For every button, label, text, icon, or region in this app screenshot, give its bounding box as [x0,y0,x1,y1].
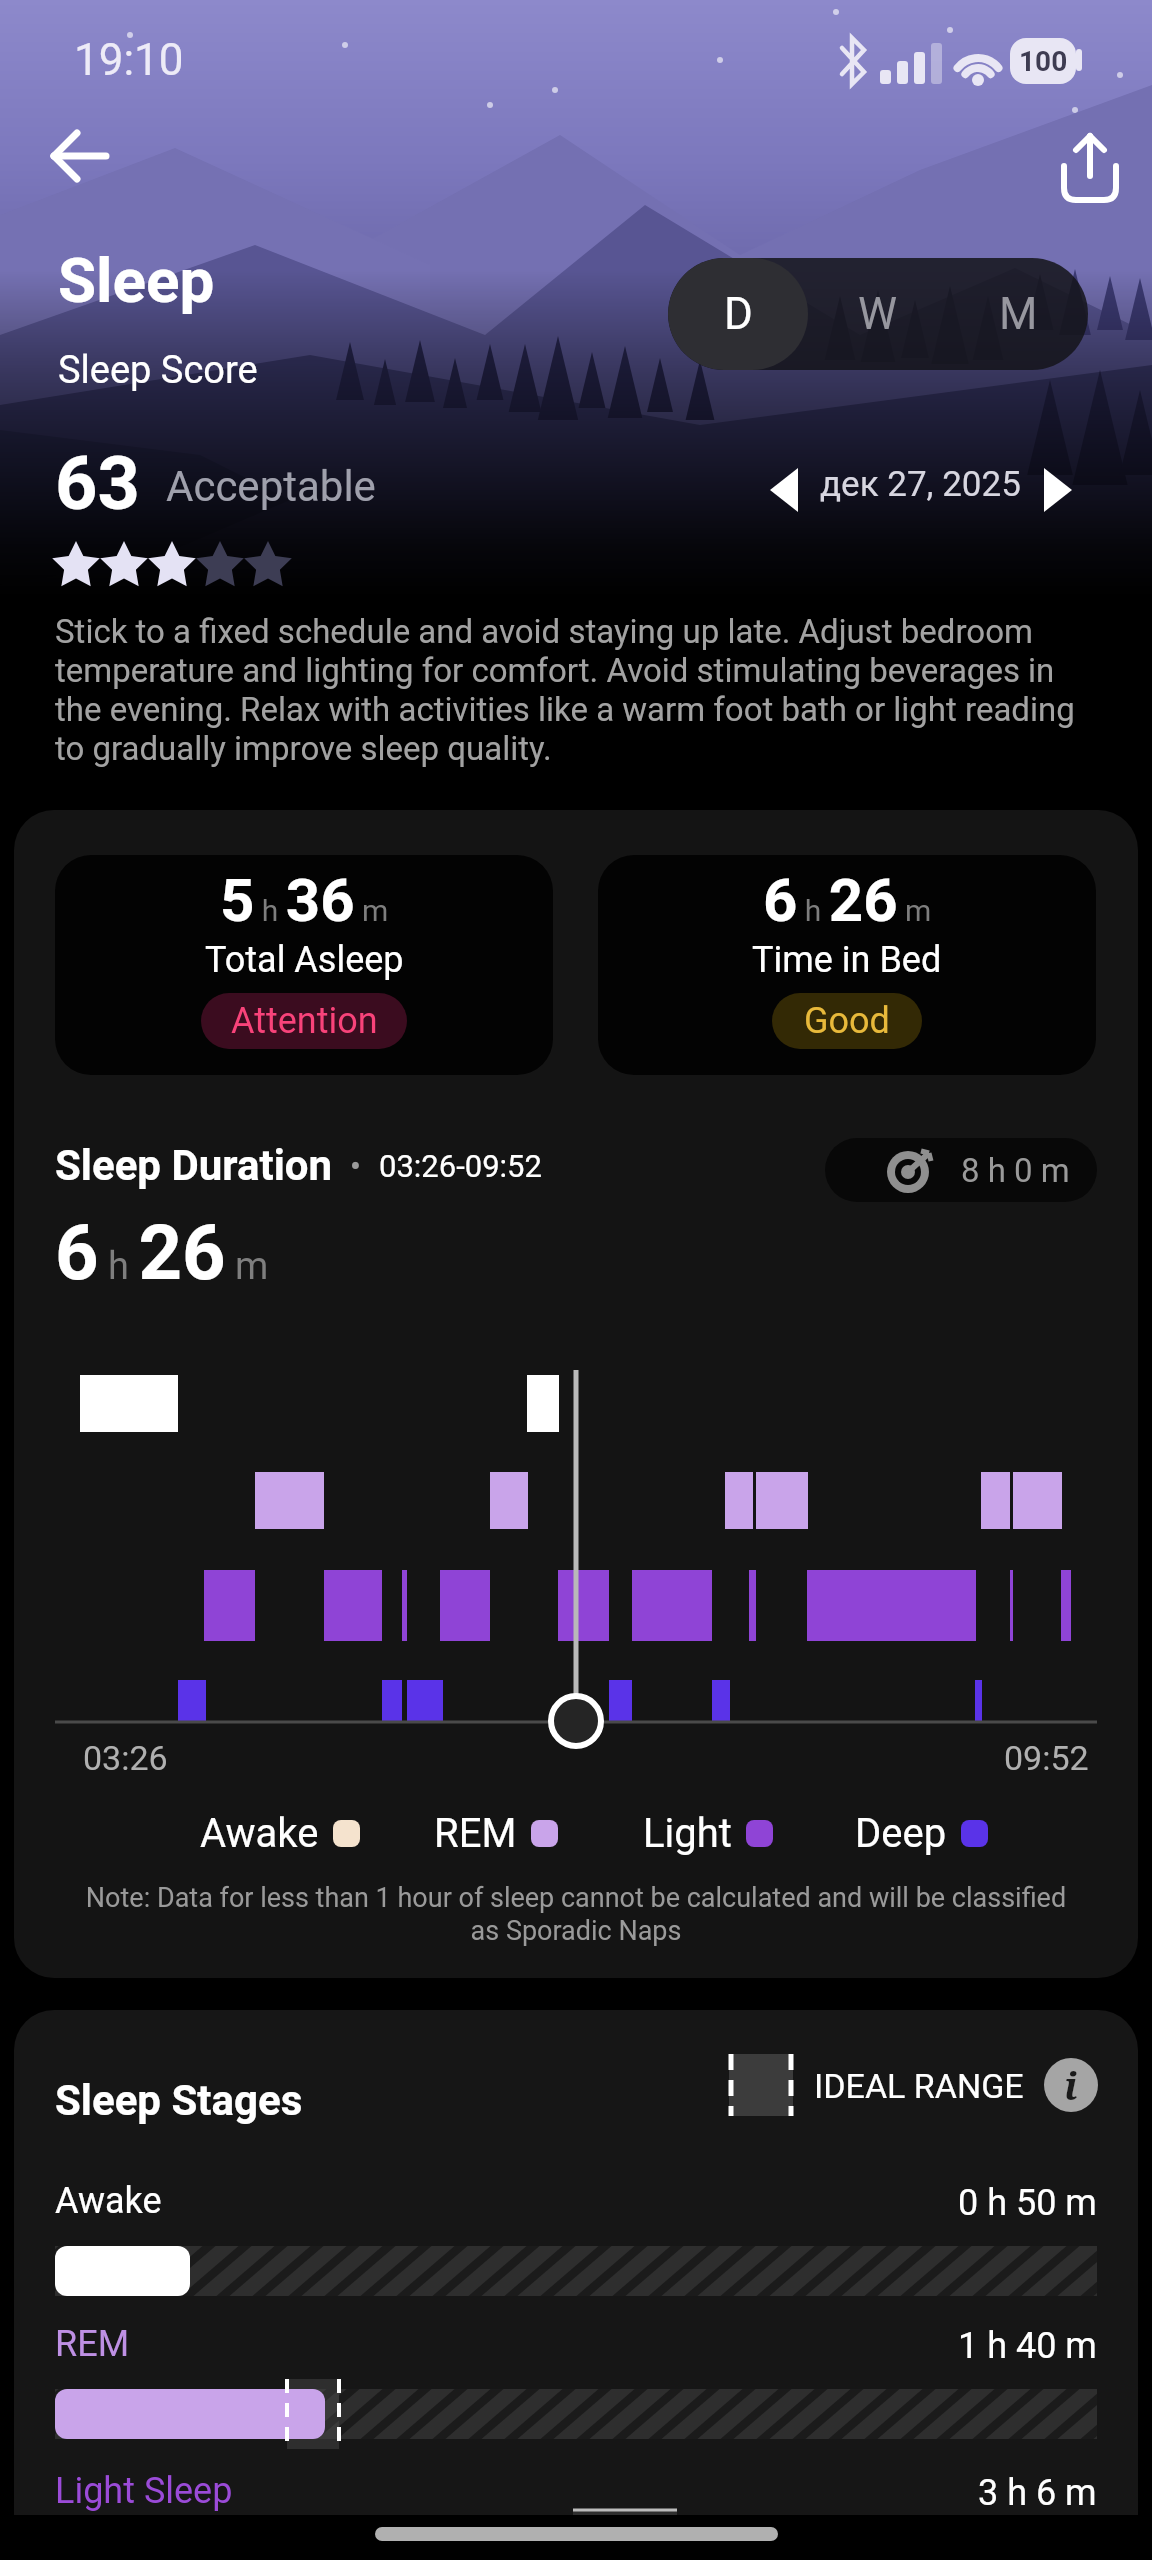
staticText: Time in Bed [752,939,942,981]
staticText: Total Asleep [205,939,404,981]
button[interactable] [1052,130,1132,214]
staticText: Awake [200,1810,319,1856]
staticText: W [858,288,898,340]
staticText: Light [643,1810,732,1856]
button[interactable]: 8 h 0 m [825,1138,1097,1202]
button[interactable]: 6 h 26 m [598,855,1096,1075]
staticText: 1 h 40 m [958,2325,1097,2367]
staticText: Awake [55,2180,162,2222]
staticText: D [724,288,753,340]
staticText: 8 h 0 m [961,1151,1070,1190]
staticText: REM [55,2323,130,2365]
button[interactable] [375,2527,778,2541]
staticText: Stick to a fixed schedule and avoid stay… [55,612,1105,768]
staticText: 63 [55,440,140,527]
button[interactable]: i [1044,2058,1098,2112]
button[interactable] [1026,460,1086,520]
staticText: Sleep Score [58,348,258,393]
staticText: 6 h 26 m [763,865,932,935]
staticText: 100 [1019,45,1068,78]
staticText: IDEAL RANGE [814,2066,1024,2106]
staticText: 03:26 [83,1738,168,1778]
button[interactable]: D [668,258,808,370]
button[interactable]: 5 h 36 m [55,855,553,1075]
staticText: 6 h 26 m [55,1208,269,1297]
button[interactable]: M [948,258,1088,370]
button[interactable] [756,460,816,520]
staticText: Deep [855,1810,947,1856]
staticText: 3 h 6 m [978,2472,1097,2514]
staticText: 09:52 [1004,1738,1089,1778]
staticText: Sleep Stages [55,2076,303,2125]
staticText: 19:10 [74,34,184,86]
staticText: Note: Data for less than 1 hour of sleep… [76,1882,1076,1947]
button[interactable] [38,116,122,196]
staticText: Sleep [58,244,215,317]
staticText: 0 h 50 m [958,2182,1097,2224]
button[interactable]: W [808,258,948,370]
staticText: Good [804,1000,890,1042]
staticText: Acceptable [166,462,376,511]
staticText: Sleep Duration [55,1141,333,1190]
staticText: 03:26-09:52 [379,1148,542,1184]
staticText: 5 h 36 m [220,865,389,935]
staticText: дек 27, 2025 [820,464,1021,505]
staticText: Attention [231,1000,378,1042]
staticText: Light Sleep [55,2470,233,2512]
staticText: REM [434,1810,517,1856]
staticText: M [999,288,1038,340]
staticText: i [1064,2059,1078,2111]
staticText: • [333,1146,379,1186]
